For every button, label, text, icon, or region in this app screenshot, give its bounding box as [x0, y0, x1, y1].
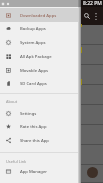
button[interactable]: [0, 45, 103, 65]
staticText: Useful Link: [6, 159, 27, 164]
button[interactable]: Add: [87, 167, 98, 178]
button[interactable]: Movable Apps: [0, 63, 79, 77]
staticText: Downloaded Apps: [20, 13, 57, 19]
button[interactable]: [0, 145, 103, 165]
button[interactable]: Share this App: [0, 133, 79, 147]
staticText: Rate this App: [20, 124, 47, 130]
button[interactable]: All Apk Package: [0, 49, 79, 63]
button[interactable]: SD Card Apps: [0, 76, 79, 90]
button[interactable]: Rate this App: [0, 119, 79, 133]
staticText: Settings: [20, 111, 37, 117]
button[interactable]: App Manager: [0, 164, 79, 178]
staticText: Share this App: [20, 138, 49, 144]
button[interactable]: Downloaded Apps: [0, 8, 79, 22]
staticText: Movable Apps: [20, 68, 49, 74]
button[interactable]: [0, 85, 103, 105]
staticText: System Apps: [20, 40, 46, 46]
staticText: Backup Apps: [20, 26, 46, 32]
staticText: About: [6, 99, 18, 104]
button[interactable]: [0, 125, 103, 145]
staticText: App Manager: [20, 169, 48, 175]
button[interactable]: [0, 25, 103, 45]
staticText: 8:22 PM: [83, 0, 102, 7]
button[interactable]: [0, 65, 103, 85]
button[interactable]: Settings: [0, 106, 79, 120]
button[interactable]: Search: [82, 11, 92, 21]
staticText: SD Card Apps: [20, 81, 47, 87]
button[interactable]: More options: [91, 11, 101, 21]
button[interactable]: System Apps: [0, 35, 79, 49]
button[interactable]: [0, 105, 103, 125]
staticText: All Apk Package: [20, 54, 52, 60]
button[interactable]: Backup Apps: [0, 21, 79, 35]
button[interactable]: [0, 165, 103, 183]
